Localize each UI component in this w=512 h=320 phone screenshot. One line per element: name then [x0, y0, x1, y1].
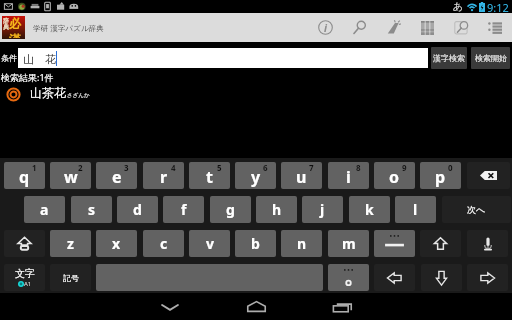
staticText: 山茶花: [30, 85, 66, 100]
staticText: 6: [263, 162, 268, 173]
staticText: 検索結果:1件: [1, 71, 54, 83]
staticText: 条件: [1, 53, 17, 63]
staticText: a: [40, 200, 49, 219]
button[interactable]: Move cursor left: [374, 264, 415, 291]
staticText: 文字: [15, 267, 35, 280]
staticText: v: [206, 234, 214, 253]
button[interactable]: s: [71, 196, 112, 223]
staticText: 7: [309, 162, 314, 173]
button[interactable]: Hide keyboard: [134, 293, 206, 320]
staticText: 8: [356, 162, 361, 173]
button[interactable]: Move cursor down: [421, 264, 462, 291]
staticText: 漢字検索: [433, 53, 465, 63]
staticText: k: [365, 200, 374, 219]
button[interactable]: Menu: [478, 13, 512, 42]
staticText: w: [64, 166, 78, 188]
button[interactable]: Search: [342, 13, 376, 42]
button[interactable]: 8: [328, 162, 369, 189]
button[interactable]: Home: [220, 293, 292, 320]
button[interactable]: n: [281, 230, 322, 257]
staticText: e: [112, 166, 122, 188]
button[interactable]: 9: [374, 162, 415, 189]
staticText: 学研 漢字パズル辞典: [33, 23, 104, 33]
button[interactable]: x: [96, 230, 137, 257]
staticText: s: [88, 200, 96, 219]
staticText: 検索開始: [475, 53, 507, 63]
staticText: o: [389, 166, 400, 188]
button[interactable]: Caps lock: [4, 230, 45, 257]
button[interactable]: l: [395, 196, 436, 223]
staticText: c: [160, 234, 168, 253]
button[interactable]: 2: [50, 162, 91, 189]
button[interactable]: a: [24, 196, 65, 223]
button[interactable]: m: [328, 230, 369, 257]
button[interactable]: 1: [4, 162, 45, 189]
button[interactable]: v: [189, 230, 230, 257]
button[interactable]: 6: [235, 162, 276, 189]
staticText: t: [206, 166, 213, 188]
button[interactable]: g: [210, 196, 251, 223]
staticText: m: [342, 234, 356, 253]
button[interactable]: Info: [308, 13, 342, 42]
staticText: z: [67, 234, 74, 253]
staticText: u: [296, 166, 307, 188]
staticText: h: [272, 200, 282, 219]
button[interactable]: 4: [143, 162, 184, 189]
button[interactable]: Next: [442, 196, 511, 223]
button[interactable]: Delete: [467, 162, 510, 189]
button[interactable]: 7: [281, 162, 322, 189]
button[interactable]: Voice input: [467, 230, 508, 257]
button[interactable]: Hyphen: [374, 230, 415, 257]
staticText: r: [160, 166, 168, 188]
button[interactable]: 山茶花: [0, 84, 512, 104]
staticText: q: [19, 166, 30, 188]
staticText: y: [251, 166, 261, 188]
staticText: 0: [448, 162, 453, 173]
button[interactable]: 0: [420, 162, 461, 189]
button[interactable]: Input mode: [4, 264, 45, 291]
staticText: i: [346, 166, 351, 188]
button[interactable]: 漢字検索: [431, 47, 467, 69]
staticText: 5: [217, 162, 222, 173]
button[interactable]: Draw: [376, 13, 410, 42]
staticText: 2: [78, 162, 83, 173]
staticText: d: [133, 200, 142, 219]
button[interactable]: f: [163, 196, 204, 223]
staticText: x: [112, 234, 121, 253]
staticText: p: [435, 166, 446, 188]
staticText: g: [226, 200, 235, 219]
button[interactable]: Lookup: [444, 13, 478, 42]
staticText: b: [251, 234, 260, 253]
button[interactable]: c: [143, 230, 184, 257]
staticText: 次へ: [467, 204, 486, 215]
staticText: 辞: [3, 17, 9, 25]
staticText: j: [320, 200, 325, 219]
button[interactable]: Punctuation: [328, 264, 369, 291]
staticText: Gakken: [4, 37, 24, 38]
button[interactable]: z: [50, 230, 91, 257]
staticText: 4: [171, 162, 176, 173]
button[interactable]: d: [117, 196, 158, 223]
button[interactable]: 山 花: [18, 48, 428, 68]
staticText: A1: [24, 280, 32, 288]
button[interactable]: h: [256, 196, 297, 223]
button[interactable]: j: [302, 196, 343, 223]
button[interactable]: 記号: [50, 264, 91, 291]
staticText: 9: [402, 162, 407, 173]
staticText: 山 花: [23, 51, 56, 66]
button[interactable]: Move cursor right: [467, 264, 508, 291]
button[interactable]: 5: [189, 162, 230, 189]
button[interactable]: Dictionary: [410, 13, 444, 42]
button[interactable]: k: [349, 196, 390, 223]
button[interactable]: 3: [96, 162, 137, 189]
staticText: 1: [32, 162, 37, 173]
staticText: 3: [124, 162, 129, 173]
staticText: i: [324, 21, 327, 35]
button[interactable]: Shift: [420, 230, 461, 257]
button[interactable]: b: [235, 230, 276, 257]
button[interactable]: Recent apps: [306, 293, 378, 320]
button[interactable]: 検索開始: [471, 47, 510, 69]
staticText: l: [413, 200, 418, 219]
staticText: 必漢: [9, 16, 25, 38]
